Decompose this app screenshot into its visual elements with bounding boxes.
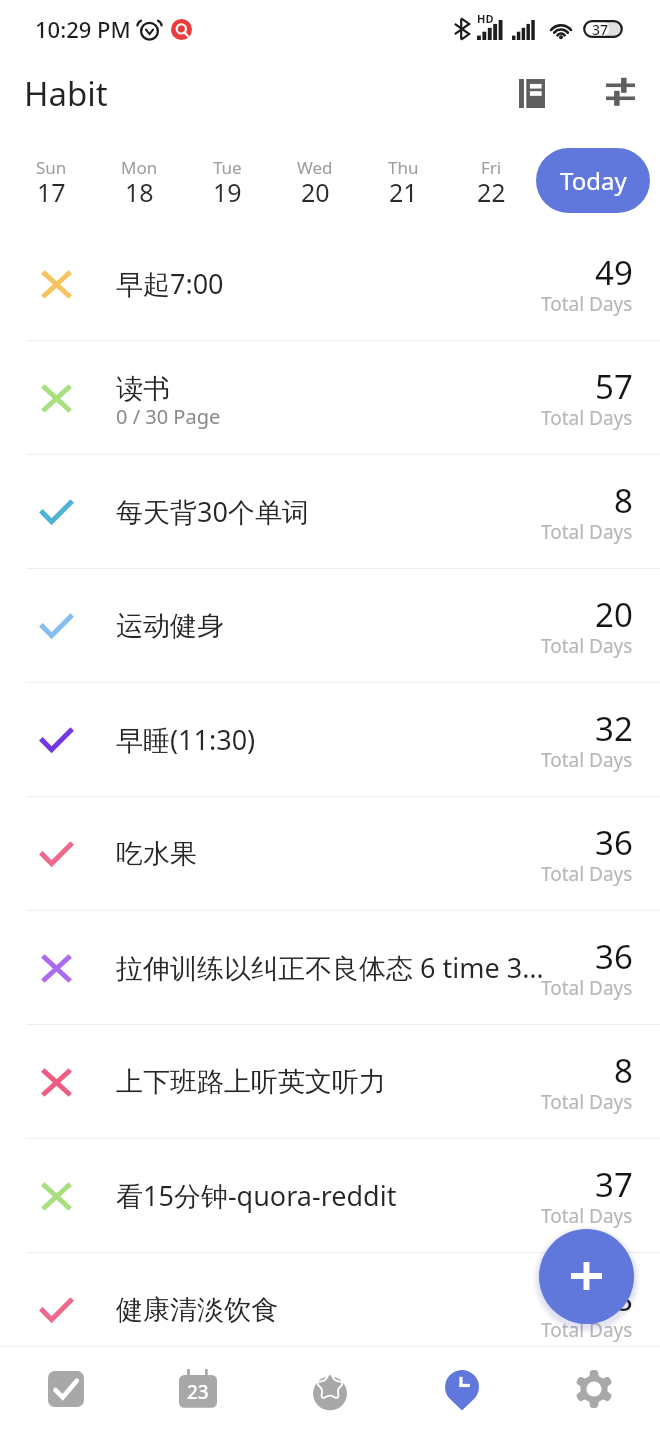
staticText: Thu xyxy=(388,156,419,179)
button[interactable]: Today xyxy=(536,148,650,213)
button[interactable]: 健康清淡饮食 xyxy=(0,1253,660,1366)
staticText: 49 xyxy=(595,250,633,295)
staticText: 32 xyxy=(595,706,633,751)
button[interactable]: Mon xyxy=(95,156,183,213)
button[interactable]: Add habit xyxy=(539,1229,634,1324)
staticText: Wed xyxy=(297,156,333,179)
staticText: 早起7:00 xyxy=(116,265,224,302)
button[interactable]: 早起7:00 xyxy=(0,227,660,340)
staticText: 18 xyxy=(125,175,154,209)
button[interactable]: 早睡(11:30) xyxy=(0,683,660,796)
staticText: 健康清淡饮食 xyxy=(116,1293,278,1327)
staticText: 20 xyxy=(301,175,330,209)
staticText: Total Days xyxy=(541,861,633,887)
staticText: 57 xyxy=(595,364,633,409)
button[interactable]: Settings filter xyxy=(591,62,649,120)
staticText: 19 xyxy=(213,175,242,209)
staticText: Habit xyxy=(24,71,108,116)
staticText: Total Days xyxy=(541,1203,633,1229)
button[interactable]: 每天背30个单词 xyxy=(0,455,660,568)
staticText: 22 xyxy=(477,175,506,209)
button[interactable]: 运动健身 xyxy=(0,569,660,682)
staticText: Today xyxy=(560,164,627,197)
button[interactable]: 上下班路上听英文听力 xyxy=(0,1025,660,1138)
button[interactable]: Timeline xyxy=(396,1347,528,1430)
button[interactable]: Sun xyxy=(7,156,95,213)
staticText: Total Days xyxy=(541,405,633,431)
button[interactable]: Calendar xyxy=(132,1347,264,1430)
staticText: 20 xyxy=(595,592,633,637)
staticText: 10:29 PM xyxy=(35,14,131,44)
staticText: Fri xyxy=(481,156,502,179)
button[interactable]: 拉伸训练以纠正不良体态 6 time 3 ... xyxy=(0,911,660,1024)
staticText: 8 xyxy=(614,1276,633,1321)
button[interactable]: Fri xyxy=(447,156,535,213)
staticText: 拉伸训练以纠正不良体态 6 time 3 ... xyxy=(116,949,547,986)
staticText: 37 xyxy=(595,1162,633,1207)
staticText: Total Days xyxy=(541,519,633,545)
staticText: 37 xyxy=(592,20,609,38)
button[interactable]: Thu xyxy=(359,156,447,213)
staticText: 36 xyxy=(595,934,633,979)
staticText: Total Days xyxy=(541,1317,633,1343)
staticText: HD xyxy=(477,11,494,26)
staticText: 吃水果 xyxy=(116,837,197,871)
button[interactable]: Settings xyxy=(528,1347,660,1430)
staticText: 8 xyxy=(614,478,633,523)
staticText: 读书 xyxy=(116,372,170,406)
button[interactable]: 读书 xyxy=(0,341,660,454)
staticText: Total Days xyxy=(541,1089,633,1115)
staticText: Sun xyxy=(36,156,67,179)
staticText: 36 xyxy=(595,820,633,865)
staticText: 8 xyxy=(614,1048,633,1093)
button[interactable]: 看15分钟-quora-reddit xyxy=(0,1139,660,1252)
staticText: 每天背30个单词 xyxy=(116,493,309,530)
staticText: 23 xyxy=(187,1379,209,1405)
button[interactable]: Notes xyxy=(503,64,561,122)
staticText: 早睡(11:30) xyxy=(116,721,256,758)
staticText: 17 xyxy=(37,175,66,209)
button[interactable]: Achievements xyxy=(264,1347,396,1430)
staticText: Total Days xyxy=(541,747,633,773)
staticText: Total Days xyxy=(541,633,633,659)
staticText: Tue xyxy=(213,156,242,179)
button[interactable]: Tue xyxy=(183,156,271,213)
staticText: Total Days xyxy=(541,975,633,1001)
staticText: 看15分钟-quora-reddit xyxy=(116,1177,397,1214)
staticText: 21 xyxy=(389,175,418,209)
button[interactable]: Wed xyxy=(271,156,359,213)
button[interactable]: 吃水果 xyxy=(0,797,660,910)
staticText: Mon xyxy=(121,156,158,179)
staticText: 0 / 30 Page xyxy=(116,403,221,430)
staticText: 运动健身 xyxy=(116,609,224,643)
button[interactable]: Habits xyxy=(0,1347,132,1430)
staticText: 上下班路上听英文听力 xyxy=(116,1065,386,1099)
staticText: Total Days xyxy=(541,291,633,317)
